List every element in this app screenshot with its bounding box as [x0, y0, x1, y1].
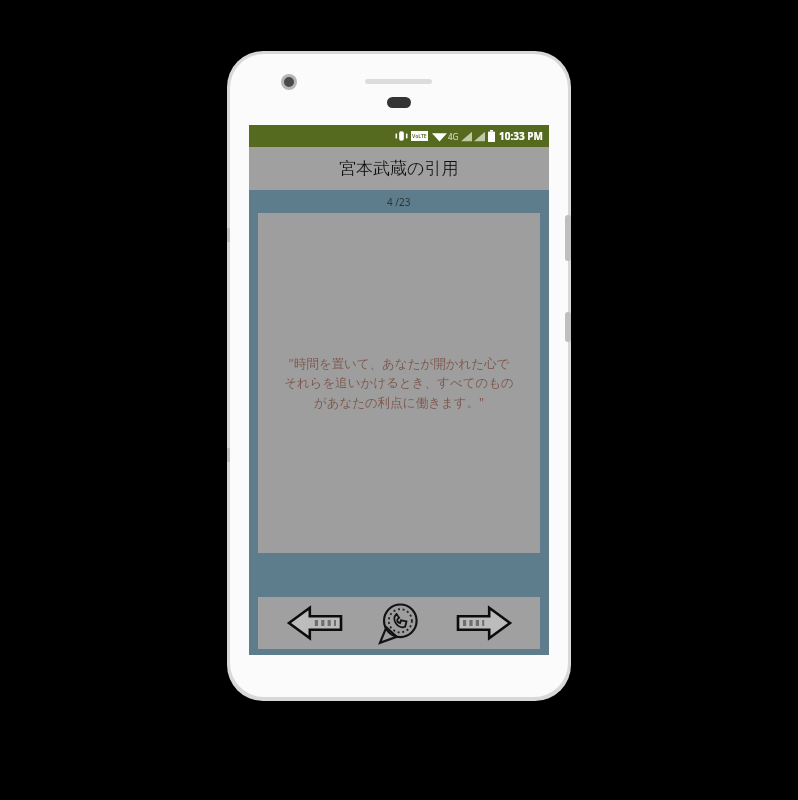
staticText: 10:33 PM	[499, 129, 543, 143]
staticText: 4 /23	[387, 195, 411, 209]
button[interactable]: Share on WhatsApp	[371, 598, 427, 648]
staticText: 宮本武蔵の引用	[339, 158, 459, 179]
staticText: VoLTE	[412, 133, 427, 140]
button[interactable]: Next quote	[453, 600, 515, 646]
staticText: 4G	[448, 131, 459, 142]
staticText: "時間を置いて、あなたが開かれた心でそれらを追いかけるとき、すべてのものがあなた…	[284, 355, 514, 411]
button[interactable]: Previous quote	[284, 600, 346, 646]
